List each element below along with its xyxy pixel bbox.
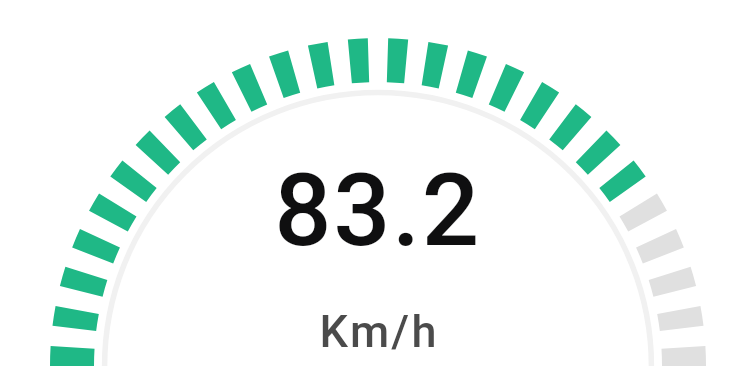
button[interactable]: Speedometer showing 83.2 kilometres per … (0, 0, 748, 386)
staticText: 83.2 (274, 151, 481, 269)
staticText: Km/h (319, 305, 439, 358)
